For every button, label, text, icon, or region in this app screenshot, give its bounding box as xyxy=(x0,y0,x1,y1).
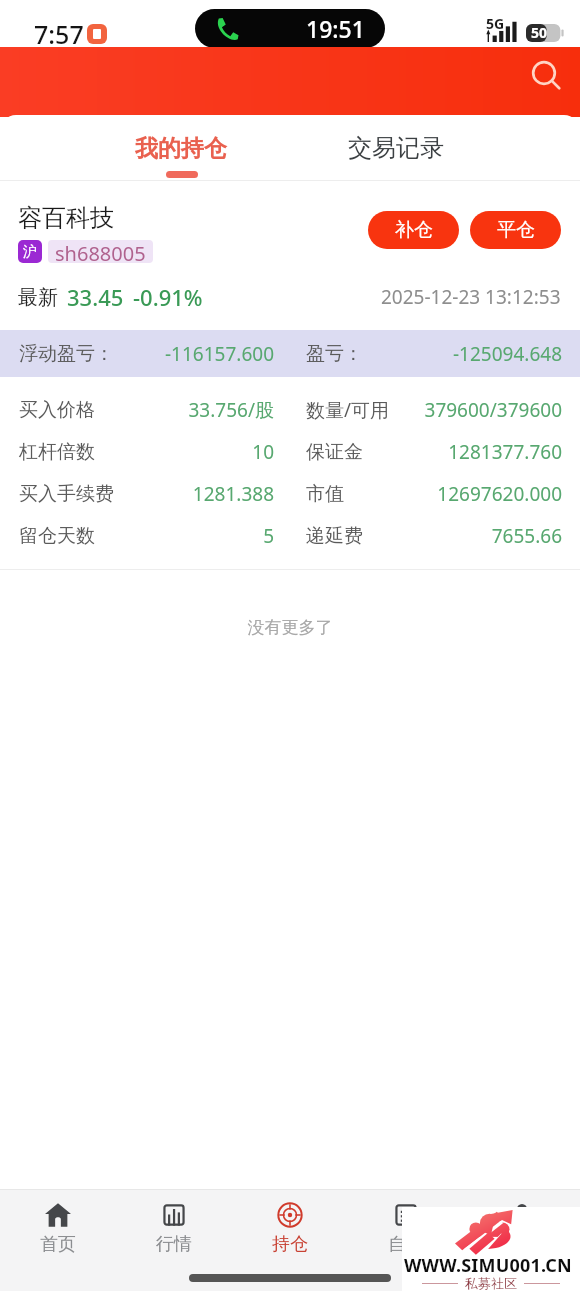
button[interactable]: 补仓 xyxy=(368,211,459,249)
button[interactable]: 自选 xyxy=(348,1190,464,1266)
button[interactable]: 我的持仓 xyxy=(0,115,290,181)
button[interactable]: 持仓 xyxy=(232,1190,348,1266)
staticText: 买入价格 xyxy=(19,398,95,422)
staticText: 补仓 xyxy=(395,218,433,242)
staticText: -125094.648 xyxy=(363,341,562,367)
button[interactable]: Search xyxy=(524,53,570,99)
staticText: 379600/379600 xyxy=(390,397,562,423)
staticText: 7655.66 xyxy=(363,523,562,549)
button[interactable]: 我的 xyxy=(464,1190,580,1266)
button[interactable]: 首页 xyxy=(0,1190,116,1266)
staticText: 我的 xyxy=(504,1233,540,1256)
staticText: 1281377.760 xyxy=(363,439,562,465)
button[interactable]: 平仓 xyxy=(470,211,561,249)
staticText: 12697620.000 xyxy=(344,481,562,507)
staticText: 私募社区 xyxy=(465,1275,517,1291)
staticText: 33.45 xyxy=(67,282,124,312)
staticText: 杠杆倍数 xyxy=(19,440,95,464)
staticText: 5G xyxy=(486,14,505,33)
staticText: 5 xyxy=(95,523,274,549)
staticText: 1281.388 xyxy=(114,481,274,507)
staticText: 盈亏： xyxy=(306,342,363,366)
staticText: 沪 xyxy=(23,243,37,261)
staticText: 首页 xyxy=(40,1233,76,1256)
staticText: 10 xyxy=(95,439,274,465)
staticText: 留仓天数 xyxy=(19,524,95,548)
staticText: 买入手续费 xyxy=(19,482,114,506)
staticText: 最新 xyxy=(18,285,58,310)
staticText: -116157.600 xyxy=(114,341,274,367)
staticText: 没有更多了 xyxy=(0,617,580,638)
staticText: 自选 xyxy=(388,1233,424,1256)
staticText: WWW.SIMU001.CN xyxy=(404,1253,572,1278)
staticText: 数量/可用 xyxy=(306,397,390,423)
staticText: 19:51 xyxy=(306,13,365,44)
staticText: -0.91% xyxy=(133,282,203,312)
staticText: 浮动盈亏： xyxy=(19,342,114,366)
staticText: 保证金 xyxy=(306,440,363,464)
staticText: 50 xyxy=(531,23,548,41)
button[interactable]: 交易记录 xyxy=(290,115,580,181)
staticText: 市值 xyxy=(306,482,344,506)
staticText: 递延费 xyxy=(306,524,363,548)
staticText: 平仓 xyxy=(497,218,535,242)
staticText: 行情 xyxy=(156,1233,192,1256)
staticText: 交易记录 xyxy=(348,133,444,163)
staticText: 2025-12-23 13:12:53 xyxy=(381,284,561,310)
staticText: sh688005 xyxy=(55,240,146,263)
staticText: 容百科技 xyxy=(18,203,114,233)
button[interactable]: 行情 xyxy=(116,1190,232,1266)
staticText: 33.756/股 xyxy=(95,397,274,423)
staticText: 7:57 xyxy=(34,17,84,51)
staticText: 持仓 xyxy=(272,1233,308,1256)
staticText: 我的持仓 xyxy=(135,134,227,163)
